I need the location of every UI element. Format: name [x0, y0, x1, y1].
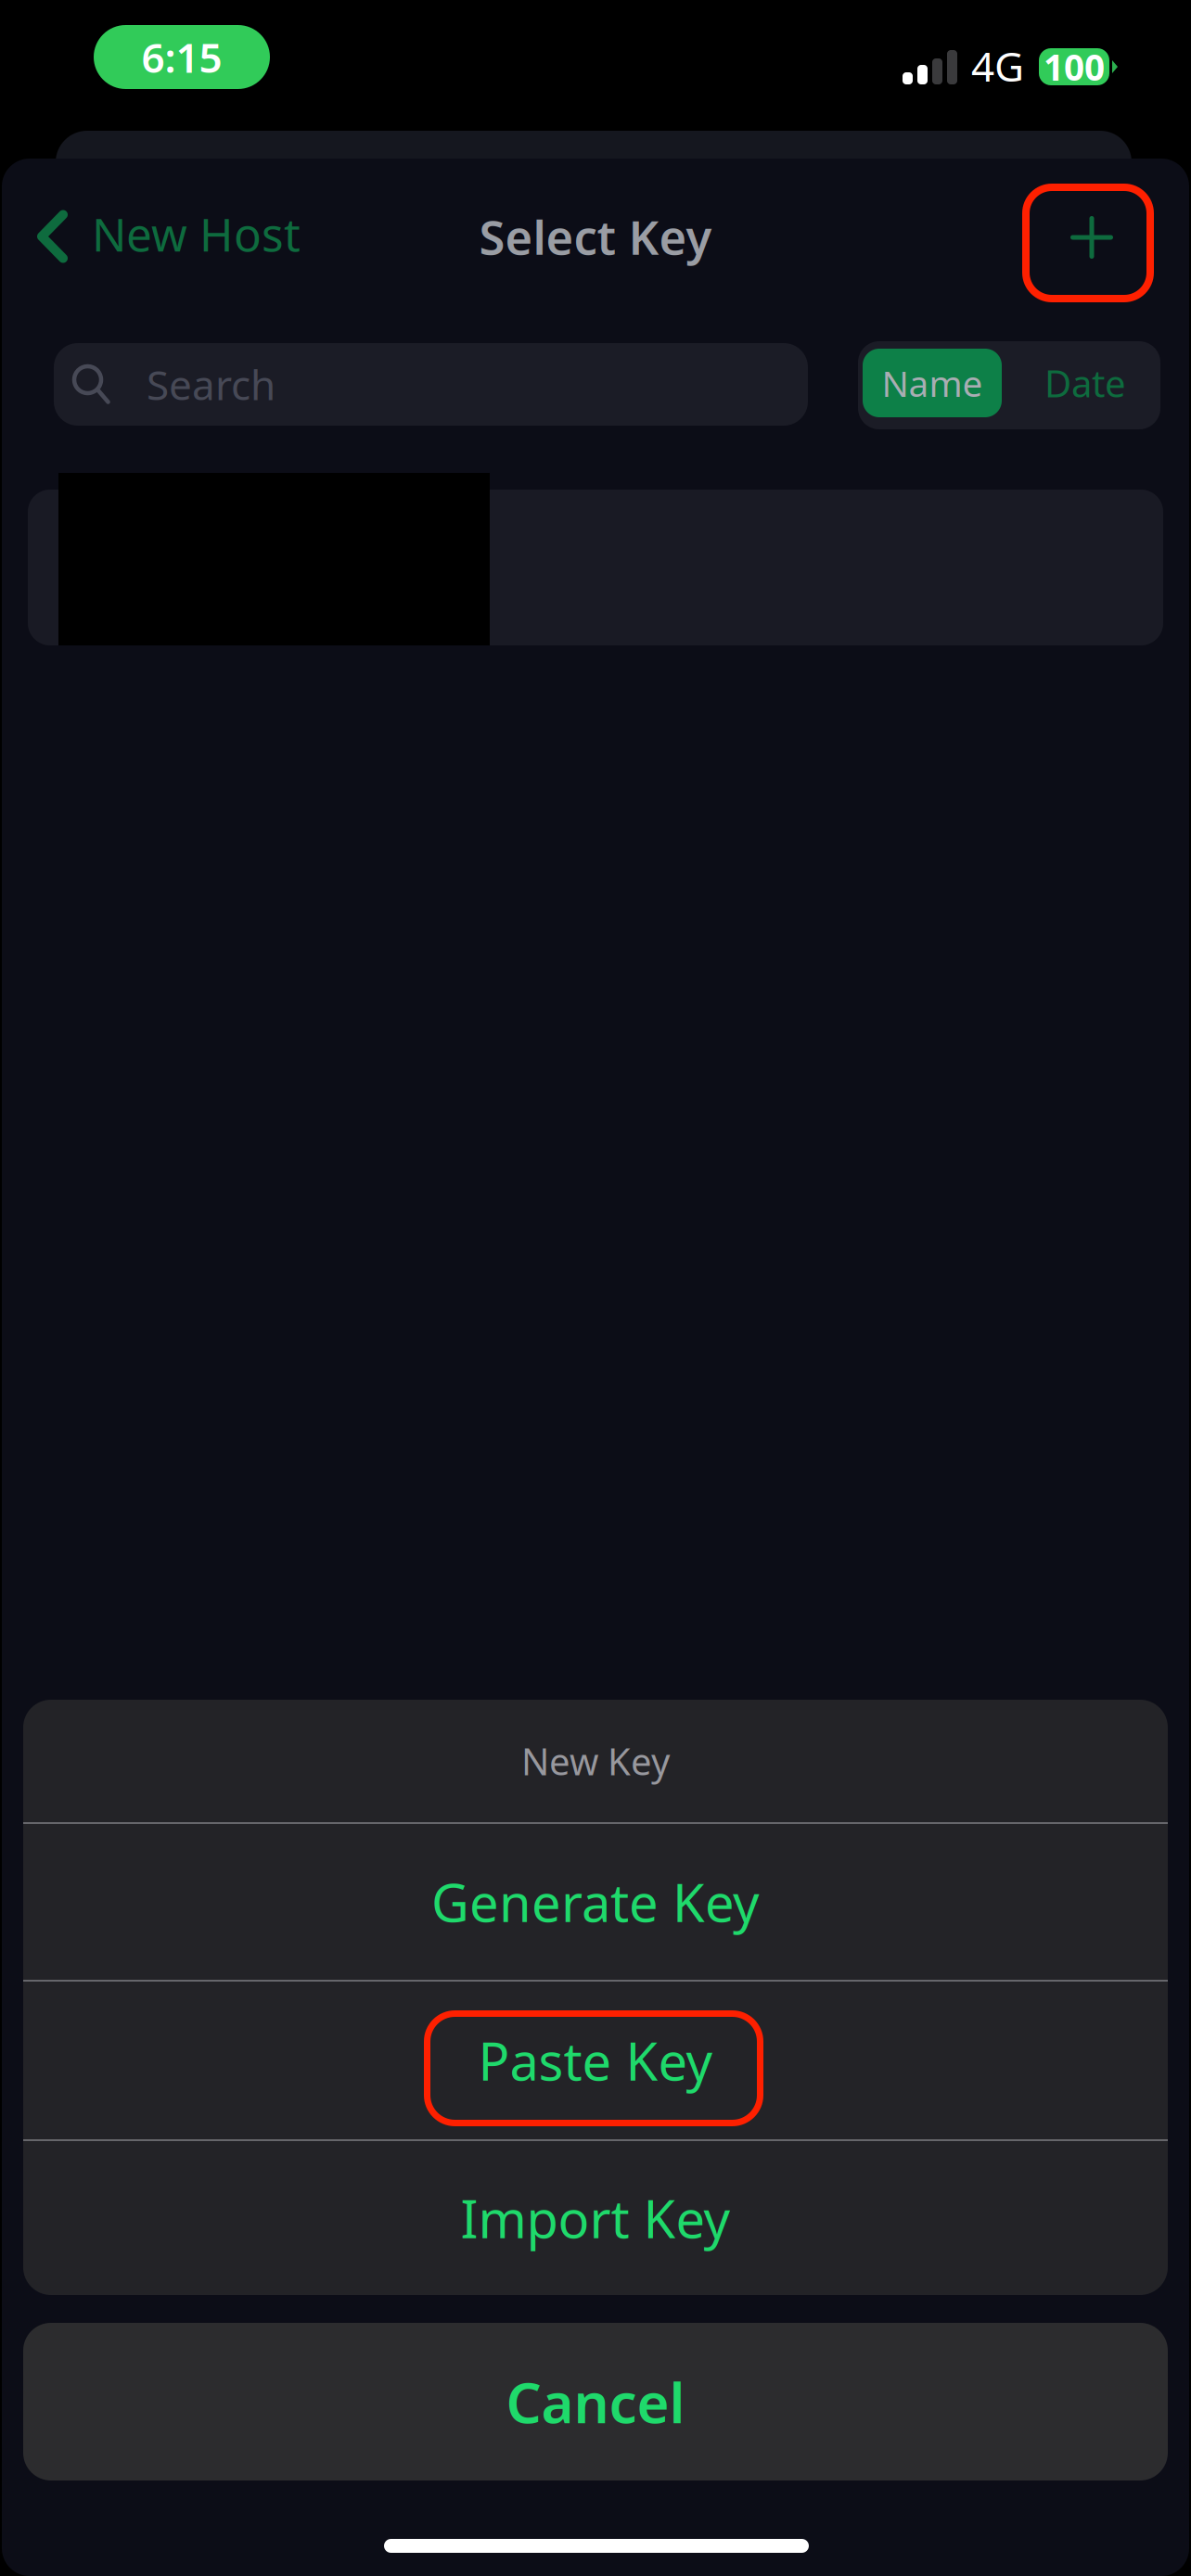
staticText: Cancel: [506, 2365, 685, 2439]
staticText: 4G: [971, 39, 1024, 93]
button[interactable]: Cancel: [23, 2323, 1168, 2480]
button[interactable]: New Host: [0, 176, 323, 297]
button[interactable]: Key: [28, 490, 1163, 645]
staticText: Import Key: [461, 2184, 730, 2253]
button[interactable]: Name: [863, 349, 1002, 417]
button[interactable]: Import Key: [23, 2141, 1168, 2295]
button[interactable]: Search: [54, 343, 808, 426]
staticText: 100: [1044, 43, 1105, 91]
button[interactable]: Paste Key: [23, 1982, 1168, 2139]
staticText: Generate Key: [431, 1867, 760, 1936]
staticText: New Host: [92, 203, 301, 264]
staticText: Name: [882, 359, 983, 407]
button[interactable]: Add key: [1026, 178, 1158, 297]
staticText: New Key: [521, 1736, 670, 1785]
button[interactable]: Date: [1008, 349, 1162, 417]
staticText: Select Key: [479, 205, 712, 268]
staticText: 6:15: [141, 30, 222, 84]
staticText: Date: [1044, 358, 1126, 408]
staticText: Search: [147, 357, 275, 411]
button[interactable]: Generate Key: [23, 1824, 1168, 1980]
staticText: Paste Key: [478, 2026, 713, 2095]
